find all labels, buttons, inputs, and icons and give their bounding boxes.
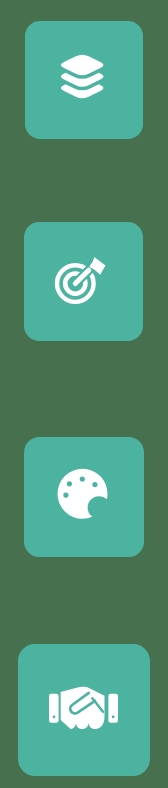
button[interactable]: Layers — [25, 21, 143, 139]
button[interactable]: Design — [24, 437, 144, 557]
button[interactable]: Partnership — [18, 644, 150, 776]
button[interactable]: Goals — [24, 222, 143, 341]
